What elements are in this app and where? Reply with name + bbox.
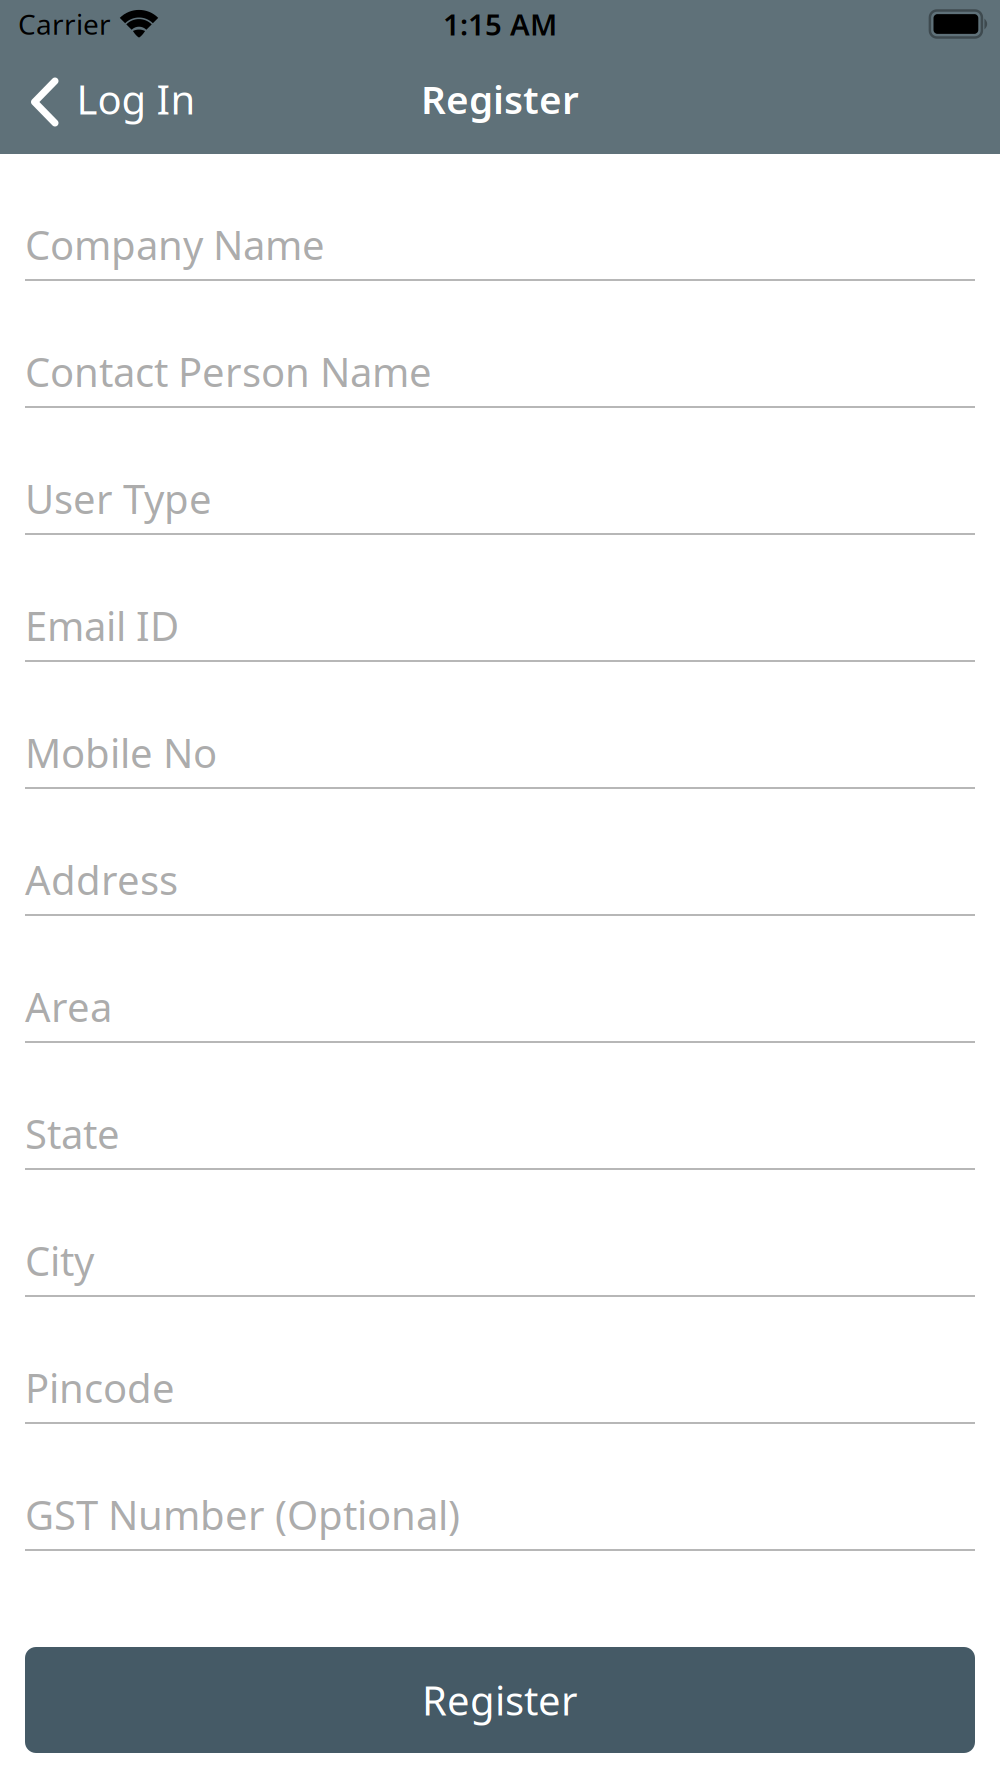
button[interactable]: Pincode <box>25 1297 975 1424</box>
staticText: Register <box>422 1673 578 1726</box>
button[interactable]: Area <box>25 916 975 1043</box>
button[interactable]: Mobile No <box>25 662 975 789</box>
button[interactable]: Register <box>25 1647 975 1753</box>
staticText: Mobile No <box>25 726 217 779</box>
button[interactable]: State <box>25 1043 975 1170</box>
button[interactable]: Address <box>25 789 975 916</box>
staticText: Pincode <box>25 1361 175 1414</box>
staticText: GST Number (Optional) <box>25 1488 460 1541</box>
staticText: Email ID <box>25 599 179 652</box>
staticText: Company Name <box>25 218 325 271</box>
staticText: 1:15 AM <box>443 4 557 43</box>
button[interactable]: User Type <box>25 408 975 535</box>
button[interactable]: Contact Person Name <box>25 281 975 408</box>
button[interactable]: GST Number (Optional) <box>25 1424 975 1551</box>
staticText: City <box>25 1234 94 1287</box>
button[interactable]: City <box>25 1170 975 1297</box>
staticText: Carrier <box>18 5 111 43</box>
staticText: User Type <box>25 472 212 525</box>
staticText: Register <box>421 73 579 125</box>
staticText: State <box>25 1107 120 1160</box>
button[interactable]: Back to Log In <box>0 44 215 154</box>
staticText: Area <box>25 980 112 1033</box>
staticText: Address <box>25 853 178 906</box>
staticText: Log In <box>76 72 195 125</box>
staticText: Contact Person Name <box>25 345 432 398</box>
button[interactable]: Email ID <box>25 535 975 662</box>
button[interactable]: Company Name <box>25 154 975 281</box>
